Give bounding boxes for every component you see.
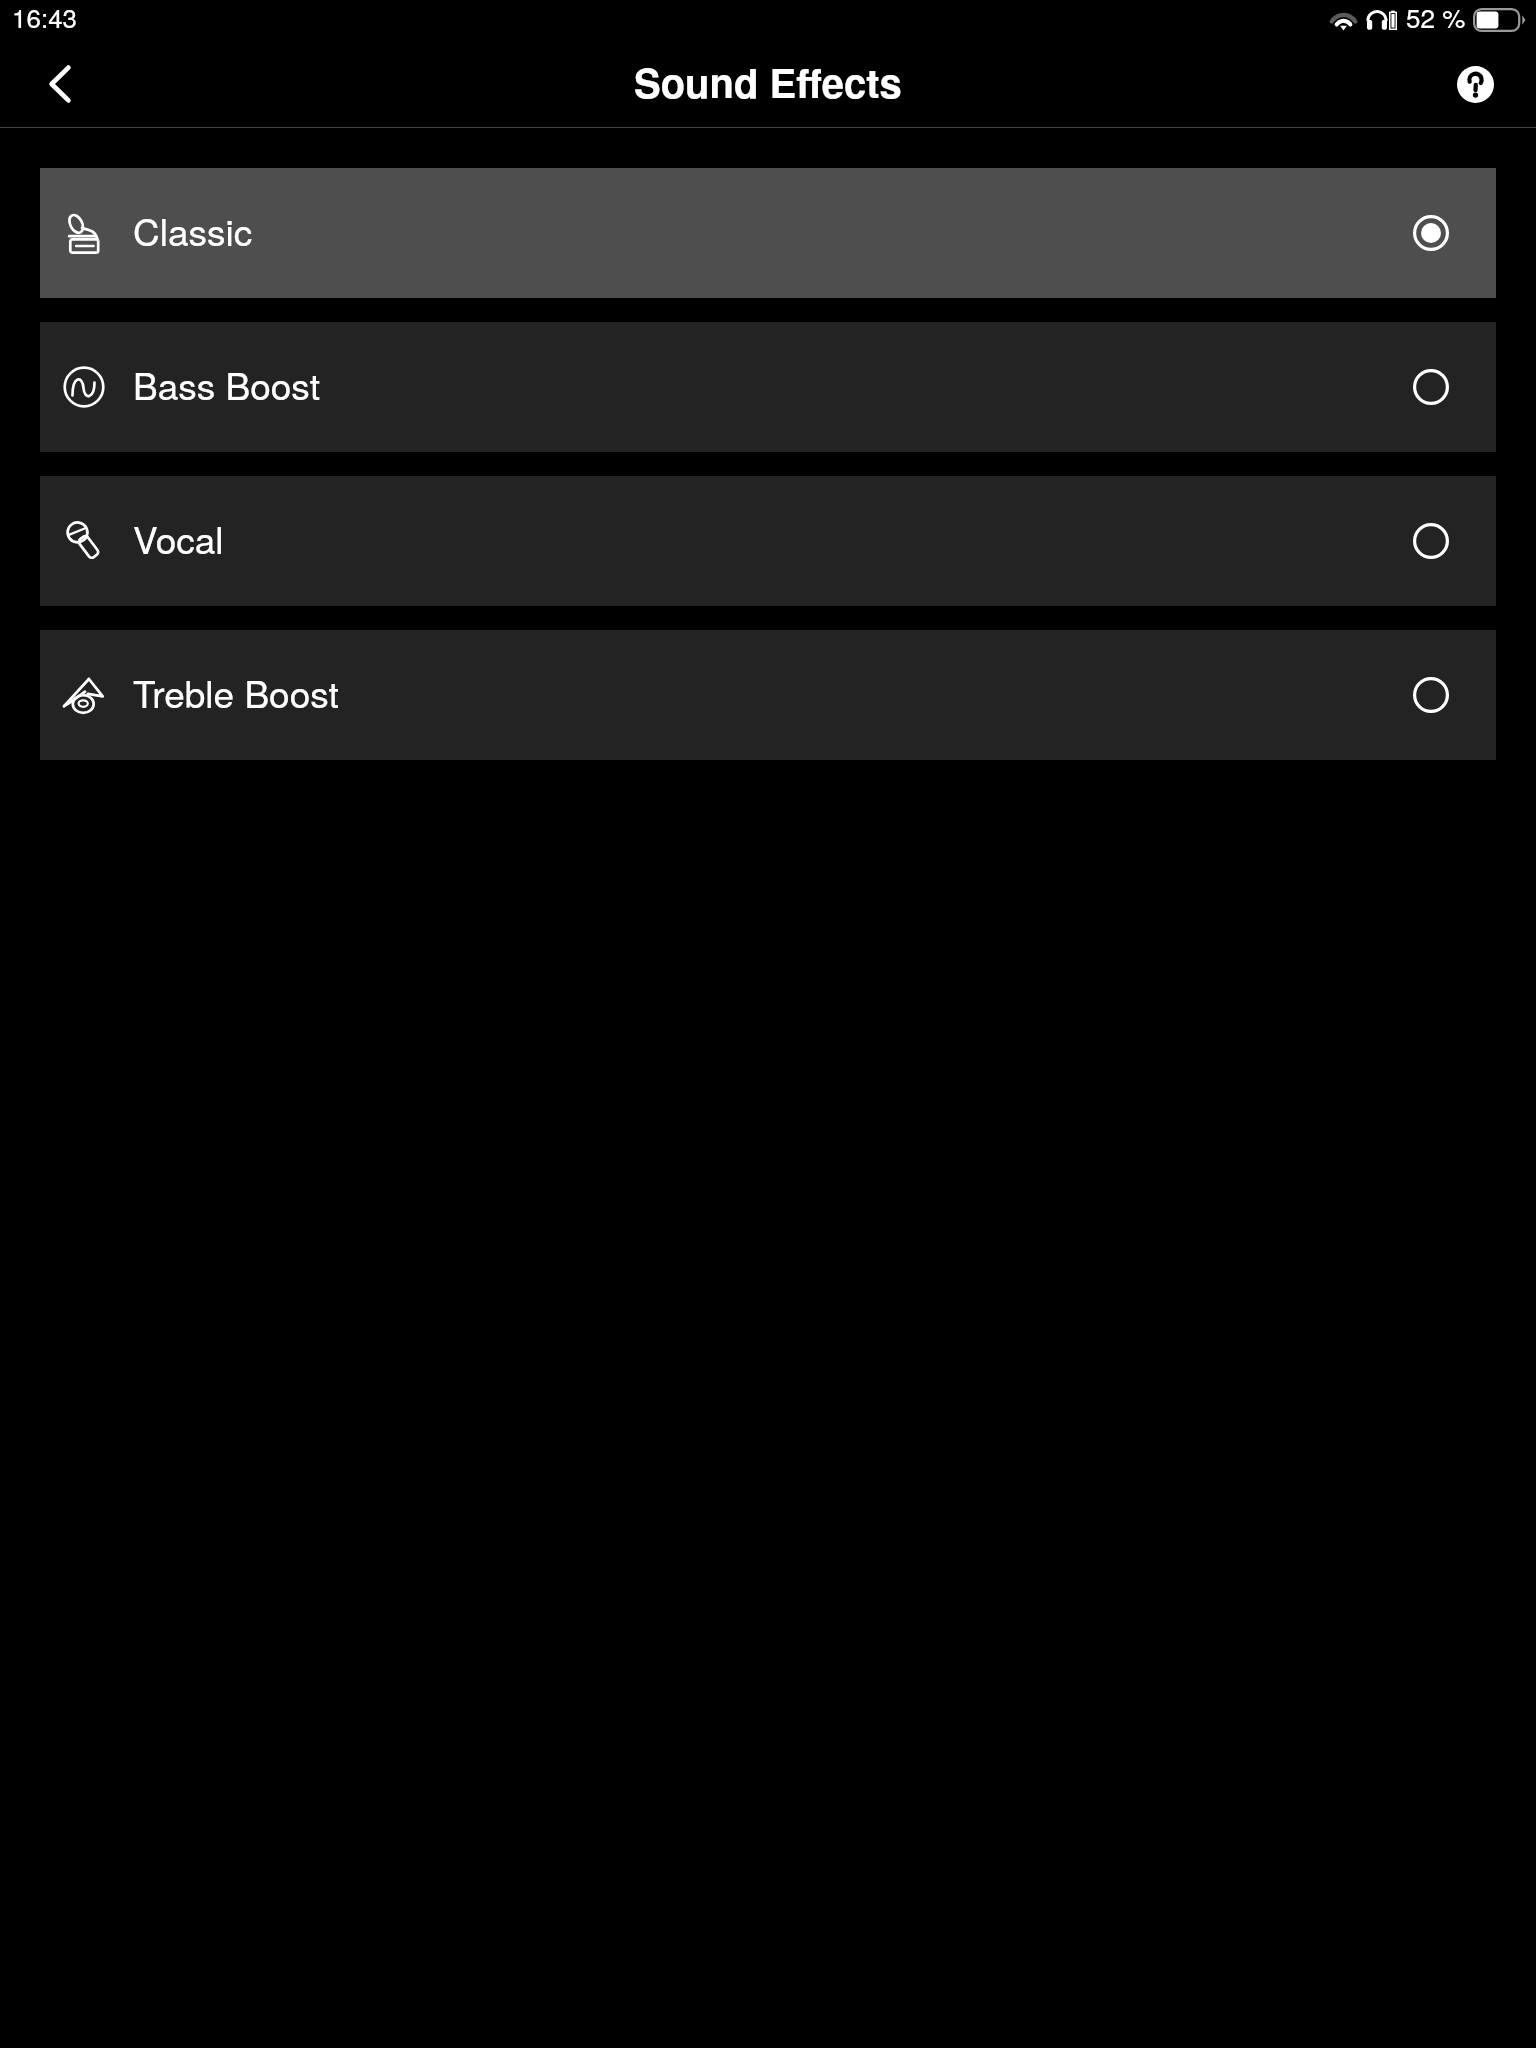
staticText: Bass Boost xyxy=(133,358,320,411)
staticText: Treble Boost xyxy=(133,666,339,719)
button[interactable]: Bass Boost xyxy=(40,322,1496,452)
staticText: Classic xyxy=(133,204,253,257)
button[interactable]: Back xyxy=(24,48,96,120)
button[interactable]: Vocal xyxy=(40,476,1496,606)
staticText: Sound Effects xyxy=(634,53,902,110)
button[interactable]: Help xyxy=(1439,48,1511,120)
button[interactable]: Treble Boost xyxy=(40,630,1496,760)
button[interactable]: Classic xyxy=(40,168,1496,298)
staticText: Vocal xyxy=(133,512,224,565)
staticText: 16:43 xyxy=(12,0,78,35)
staticText: 52 % xyxy=(1406,0,1466,35)
